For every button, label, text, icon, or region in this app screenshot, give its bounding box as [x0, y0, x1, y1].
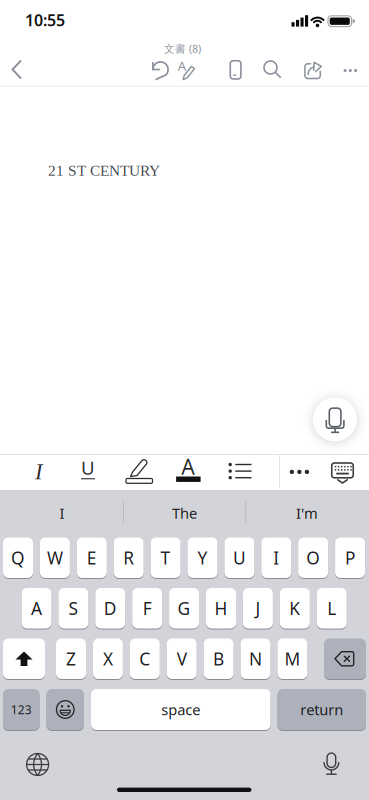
button[interactable]: Italic — [24, 456, 54, 486]
button[interactable]: J — [243, 587, 273, 629]
button[interactable]: More — [343, 68, 358, 72]
staticText: J — [255, 597, 260, 620]
button[interactable]: Underline — [73, 456, 103, 486]
staticText: space — [161, 700, 200, 719]
staticText: return — [300, 700, 343, 719]
button[interactable]: G — [169, 587, 199, 629]
staticText: G — [178, 597, 191, 620]
staticText: I — [273, 546, 279, 569]
staticText: 10:55 — [25, 9, 65, 31]
button[interactable]: Next keyboard — [26, 753, 49, 776]
button[interactable]: The — [125, 492, 243, 534]
staticText: Z — [66, 647, 76, 670]
button[interactable]: Y — [187, 537, 217, 578]
button[interactable]: Lists — [228, 462, 252, 478]
button[interactable]: Undo — [147, 58, 171, 82]
staticText: M — [284, 647, 300, 670]
button[interactable]: Font colour — [173, 457, 203, 487]
button[interactable]: U — [224, 537, 254, 578]
staticText: T — [161, 546, 171, 569]
button[interactable]: More formatting — [289, 469, 309, 474]
button[interactable]: return — [277, 688, 366, 730]
button[interactable]: I — [261, 537, 291, 578]
staticText: I'm — [296, 503, 318, 523]
button[interactable]: S — [58, 587, 88, 629]
button[interactable]: H — [206, 587, 236, 629]
button[interactable]: O — [298, 537, 328, 578]
button[interactable]: Hide keyboard — [331, 462, 354, 484]
button[interactable]: M — [277, 638, 307, 679]
button[interactable]: B — [204, 638, 234, 679]
staticText: U — [233, 546, 246, 569]
button[interactable]: Numbers — [3, 688, 39, 730]
staticText: H — [214, 597, 227, 620]
button[interactable]: P — [335, 537, 365, 578]
button[interactable]: Z — [56, 638, 86, 679]
staticText: X — [103, 647, 113, 670]
staticText: P — [345, 546, 355, 569]
staticText: I — [35, 459, 43, 484]
button[interactable]: Search — [263, 60, 282, 79]
button[interactable]: Share — [300, 59, 324, 81]
staticText: R — [123, 546, 134, 569]
button[interactable]: Shift — [3, 638, 45, 679]
button[interactable]: Back — [6, 57, 34, 83]
staticText: C — [139, 647, 150, 670]
staticText: N — [249, 647, 262, 670]
button[interactable]: I — [3, 492, 121, 534]
button[interactable]: X — [93, 638, 123, 679]
button[interactable]: L — [317, 587, 347, 629]
button[interactable]: T — [151, 537, 181, 578]
staticText: 文書 (8) — [164, 41, 201, 56]
staticText: A — [178, 57, 187, 74]
staticText: O — [306, 546, 320, 569]
staticText: D — [104, 597, 117, 620]
button[interactable]: E — [77, 537, 107, 578]
button[interactable]: Highlight — [124, 454, 154, 485]
staticText: L — [327, 597, 336, 620]
staticText: I — [59, 503, 64, 523]
button[interactable]: D — [95, 587, 125, 629]
staticText: B — [213, 647, 224, 670]
button[interactable]: R — [114, 537, 144, 578]
staticText: The — [172, 503, 197, 523]
button[interactable]: space — [91, 688, 270, 730]
button[interactable]: I'm — [248, 492, 366, 534]
staticText: S — [68, 597, 78, 620]
button[interactable]: F — [132, 587, 162, 629]
button[interactable]: W — [40, 537, 70, 578]
button[interactable]: Dictation — [321, 752, 341, 775]
button[interactable]: Mobile view — [229, 60, 242, 80]
button[interactable]: Edit — [176, 58, 198, 82]
staticText: 123 — [11, 701, 32, 717]
button[interactable]: N — [240, 638, 270, 679]
staticText: A — [181, 452, 195, 481]
button[interactable]: A — [21, 587, 51, 629]
button[interactable]: Dictate — [313, 397, 357, 441]
staticText: V — [177, 647, 187, 670]
button[interactable]: Delete — [324, 638, 366, 679]
staticText: A — [31, 597, 42, 620]
button[interactable]: K — [280, 587, 310, 629]
staticText: U — [81, 455, 95, 480]
button[interactable]: C — [130, 638, 160, 679]
staticText: Y — [197, 546, 207, 569]
button[interactable]: Q — [3, 537, 33, 578]
staticText: Q — [11, 546, 25, 569]
staticText: 21 ST CENTURY — [48, 162, 160, 179]
staticText: F — [143, 597, 152, 620]
button[interactable]: Emoji — [46, 688, 84, 730]
staticText: K — [289, 597, 300, 620]
staticText: W — [47, 546, 63, 569]
staticText: E — [87, 546, 97, 569]
button[interactable]: V — [167, 638, 197, 679]
